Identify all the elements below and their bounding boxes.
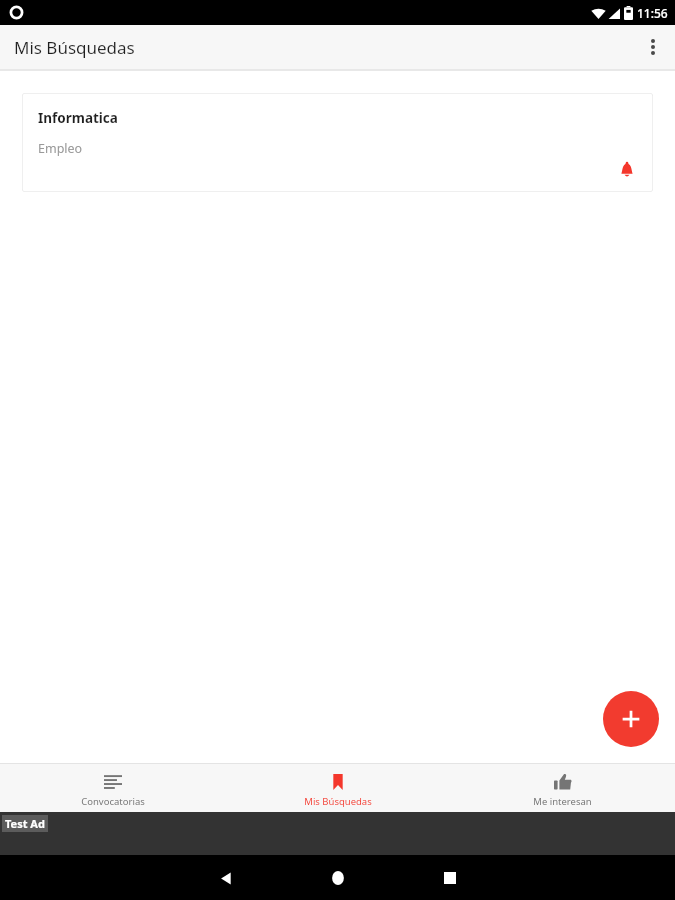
staticText: Test Ad — [5, 816, 45, 831]
staticText: Convocatorias — [81, 795, 145, 808]
button[interactable]: More options — [631, 25, 675, 69]
staticText: Me interesan — [533, 795, 592, 808]
button[interactable]: Mis Búsquedas — [225, 768, 450, 808]
button[interactable]: Informatica — [22, 93, 653, 192]
staticText: Mis Búsquedas — [14, 36, 135, 59]
button[interactable]: Me interesan — [450, 768, 675, 808]
button[interactable]: Back — [204, 856, 248, 900]
button[interactable]: Home — [316, 856, 360, 900]
button[interactable]: Add search — [603, 691, 659, 747]
button[interactable]: Notification alert — [607, 150, 647, 190]
button[interactable]: Recent apps — [428, 856, 472, 900]
staticText: 11:56 — [637, 5, 668, 21]
staticText: Informatica — [38, 109, 118, 127]
staticText: Empleo — [38, 140, 83, 157]
staticText: Mis Búsquedas — [304, 795, 372, 808]
button[interactable]: Convocatorias — [0, 768, 225, 808]
